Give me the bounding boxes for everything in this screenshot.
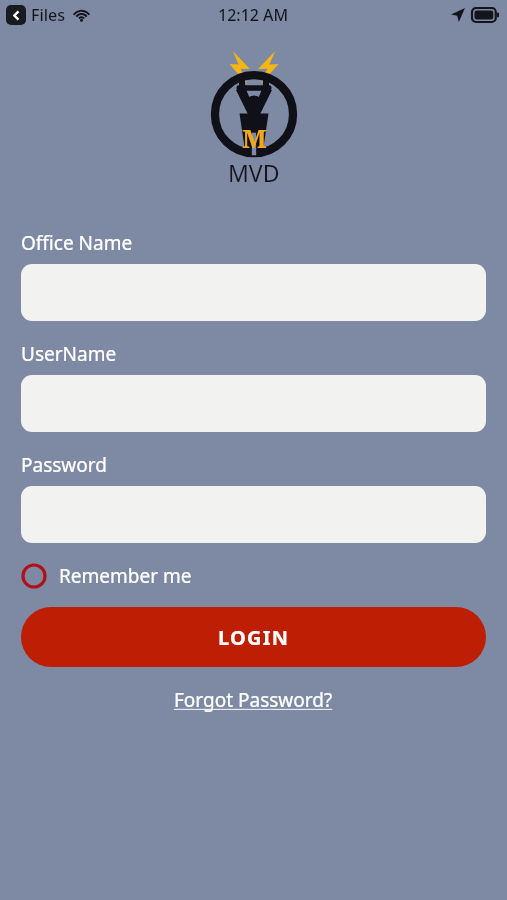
button[interactable]: [21, 486, 486, 543]
staticText: M: [242, 120, 267, 155]
staticText: MVD: [228, 157, 280, 188]
button[interactable]: [21, 375, 486, 432]
staticText: Files: [31, 4, 66, 26]
button[interactable]: Forgot Password?: [174, 687, 333, 713]
staticText: 12:12 AM: [218, 4, 289, 26]
staticText: UserName: [21, 341, 117, 367]
button[interactable]: [21, 264, 486, 321]
staticText: Forgot Password?: [174, 687, 333, 713]
button[interactable]: LOGIN: [21, 607, 486, 667]
staticText: Password: [21, 452, 107, 478]
button[interactable]: Remember me: [21, 559, 192, 593]
staticText: Remember me: [59, 563, 192, 589]
staticText: Office Name: [21, 230, 133, 256]
button[interactable]: Back to Files: [6, 5, 26, 25]
staticText: LOGIN: [218, 624, 290, 651]
